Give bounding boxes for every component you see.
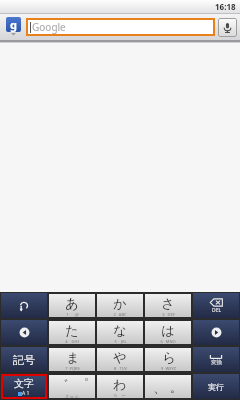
button[interactable]: ma row	[49, 348, 95, 371]
button[interactable]: Symbols	[1, 347, 47, 372]
staticText: な	[113, 322, 127, 338]
staticText: や	[113, 349, 127, 365]
staticText: か	[113, 295, 127, 311]
staticText: わ	[113, 376, 127, 392]
staticText: 9 WXYZ	[161, 366, 176, 371]
staticText: g	[10, 17, 17, 32]
button[interactable]: ra row	[145, 348, 191, 371]
button[interactable]: Undo	[1, 293, 47, 318]
staticText: ま	[66, 349, 80, 365]
staticText: 0 ー	[114, 393, 126, 398]
button[interactable]: ya row	[97, 348, 143, 371]
staticText: 実行	[208, 382, 224, 392]
staticText: さ	[161, 295, 175, 311]
button[interactable]: Dakuten small	[49, 375, 95, 398]
button[interactable]: sa row	[145, 294, 191, 317]
staticText: 1 .@	[66, 312, 79, 317]
button[interactable]: Convert	[193, 347, 239, 372]
button[interactable]: ka row	[97, 294, 143, 317]
staticText: 8 TUV	[114, 366, 127, 371]
staticText: 6 MNO	[160, 339, 176, 344]
button[interactable]: a row	[49, 294, 95, 317]
staticText: ゛ ゜	[55, 375, 89, 393]
staticText: Google	[32, 20, 66, 34]
staticText: 大 ⇔ 小	[65, 394, 79, 398]
staticText: 4 GHI	[65, 339, 79, 344]
button[interactable]: ha row	[145, 321, 191, 344]
button[interactable]: Execute	[193, 374, 239, 399]
staticText: は	[161, 322, 175, 338]
button[interactable]: Search box	[26, 18, 215, 36]
staticText: ら	[162, 349, 176, 365]
button[interactable]: Move cursor left	[1, 320, 47, 345]
button[interactable]: Voice search	[218, 18, 237, 37]
button[interactable]: na row	[97, 321, 143, 344]
staticText: 文字	[14, 377, 34, 390]
staticText: 2 ABC	[113, 312, 127, 317]
staticText: 変換	[211, 359, 222, 366]
button[interactable]: Delete	[193, 293, 239, 318]
staticText: た	[65, 322, 79, 338]
button[interactable]: ta row	[49, 321, 95, 344]
button[interactable]: Punctuation	[145, 375, 191, 398]
button[interactable]: wa row	[97, 375, 143, 398]
staticText: 、 。	[153, 378, 183, 396]
staticText: 記号	[13, 353, 35, 367]
staticText: 16:18	[215, 1, 236, 12]
button[interactable]: Switch input mode	[2, 375, 46, 398]
button[interactable]: Google search provider	[3, 17, 23, 37]
staticText: あ	[65, 295, 79, 311]
staticText: 5 JKL	[114, 339, 127, 344]
staticText: A 1	[22, 390, 30, 397]
button[interactable]: Move cursor right	[193, 320, 239, 345]
staticText: DEL	[212, 307, 222, 314]
staticText: 7 PQRS	[65, 366, 80, 371]
staticText: 3 DEF	[162, 312, 175, 317]
